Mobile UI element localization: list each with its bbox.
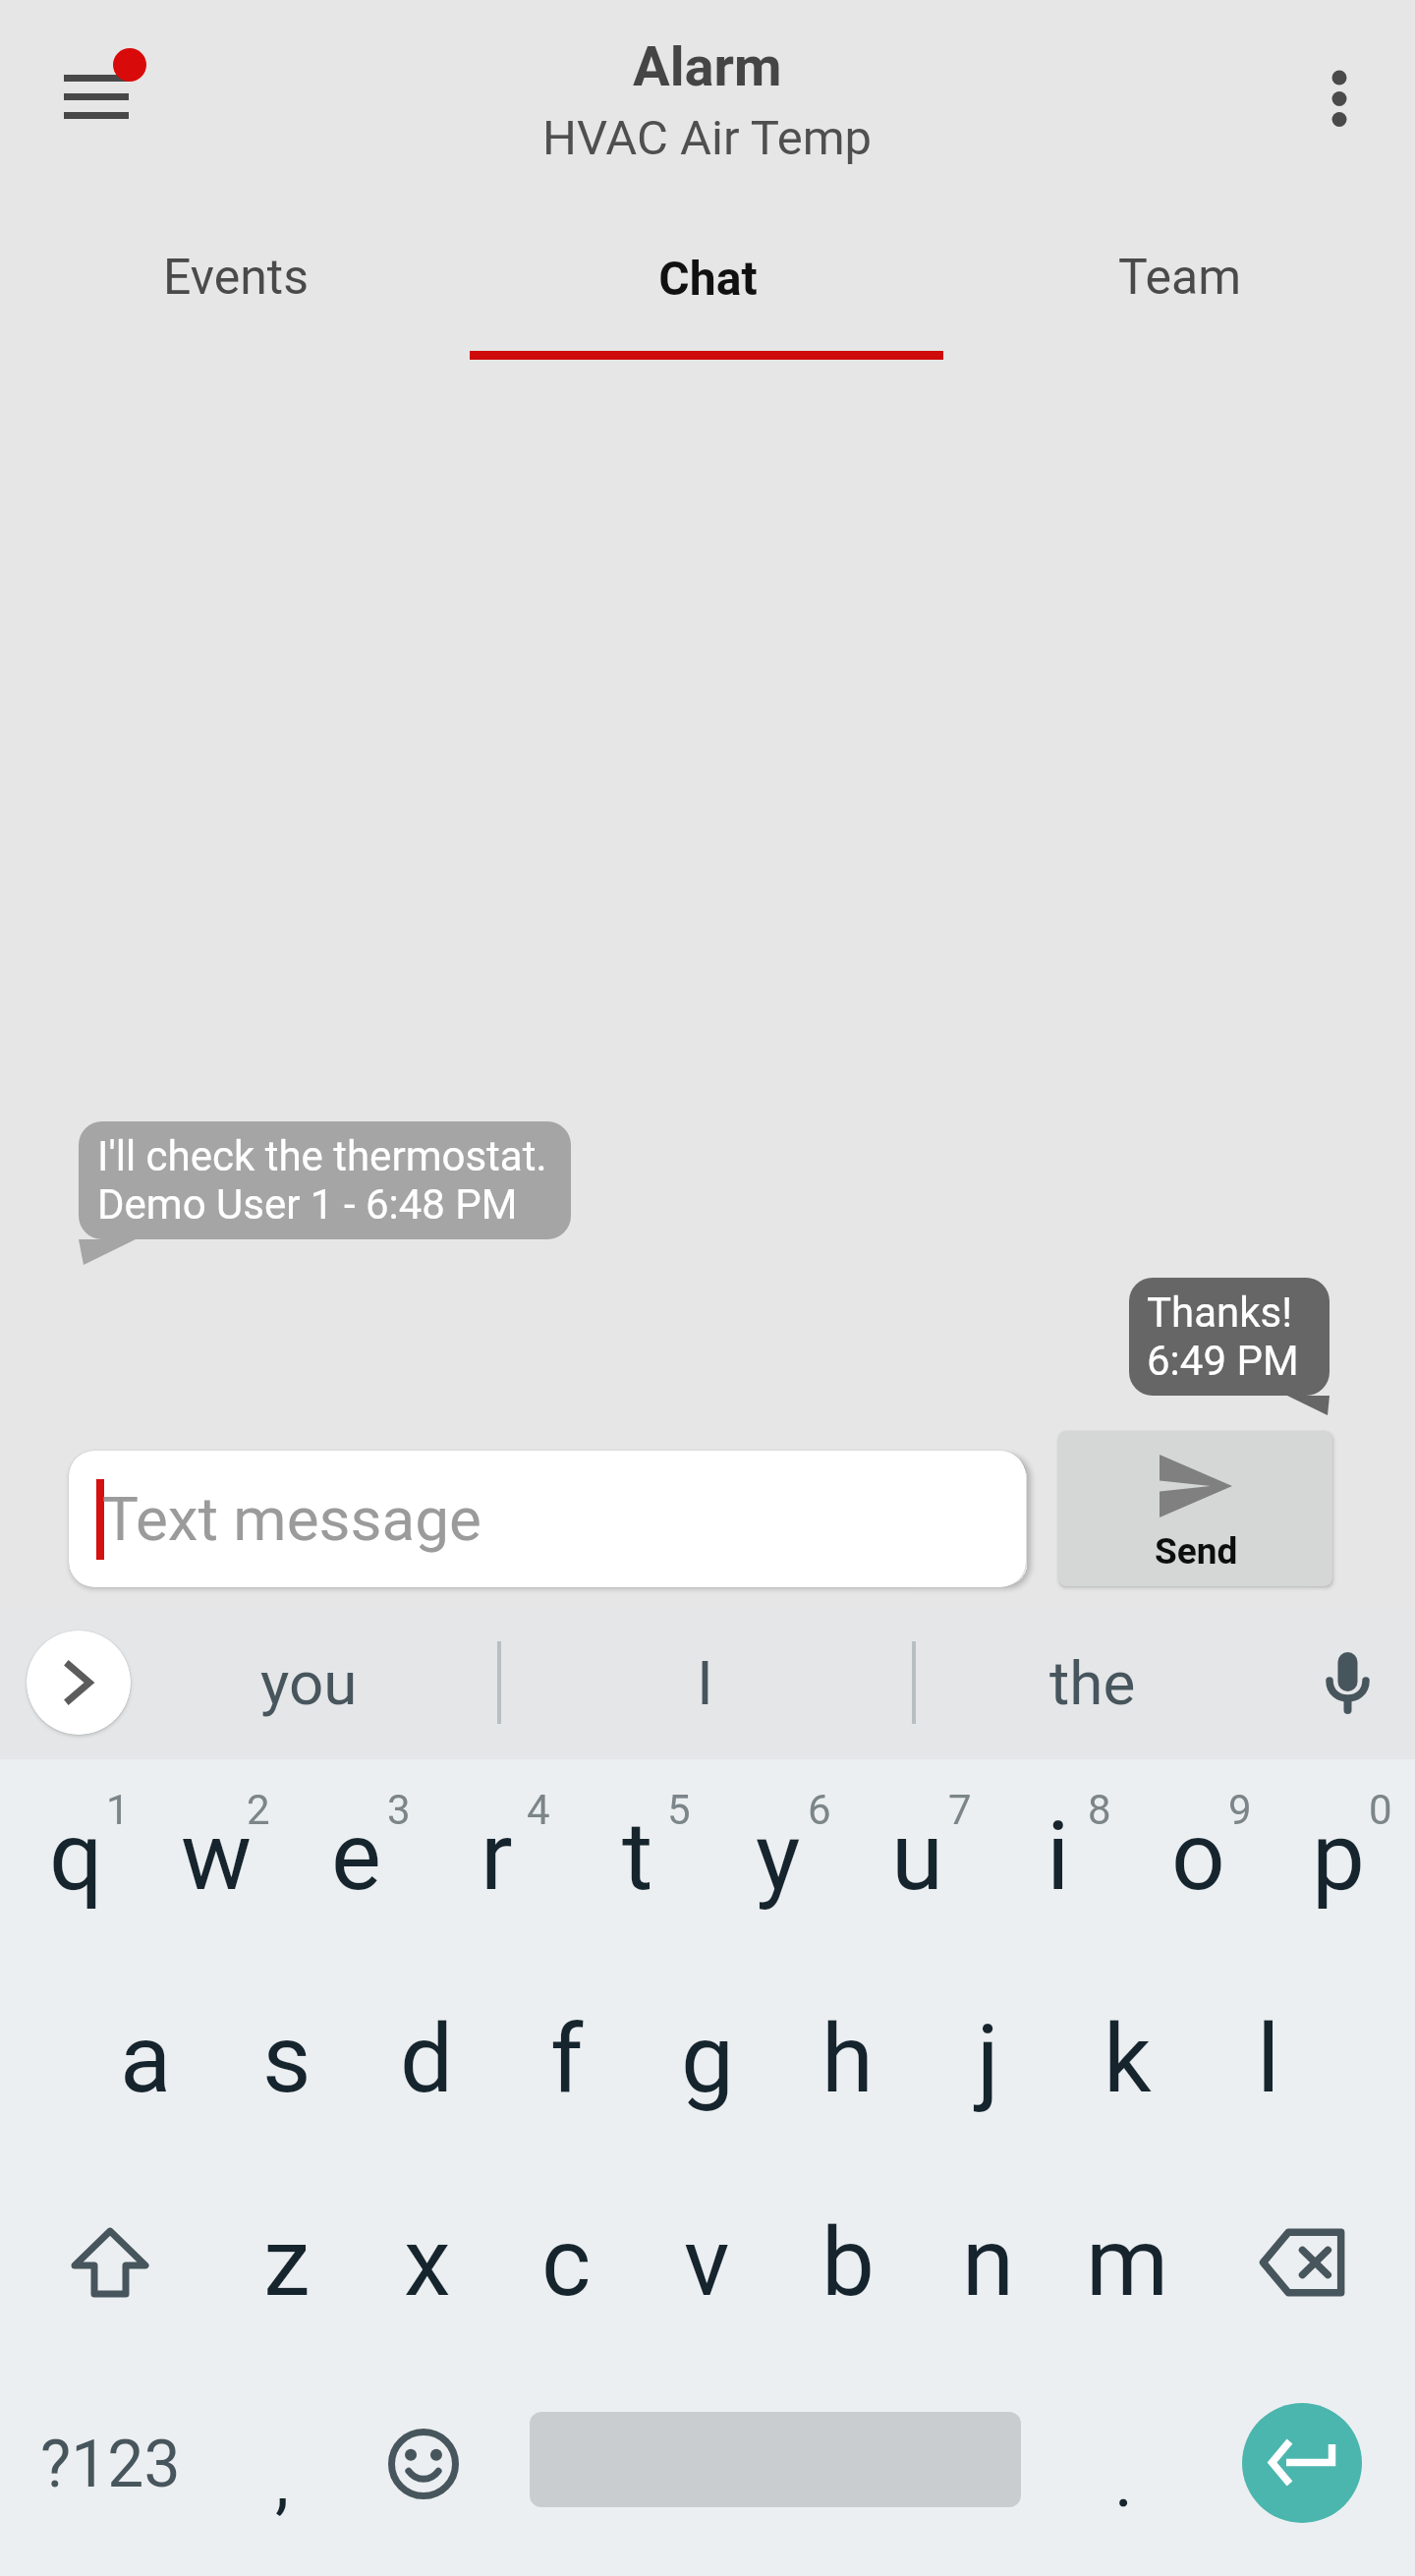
staticText: ?123 — [40, 2427, 181, 2502]
staticText: you — [260, 1647, 358, 1719]
staticText: 4 — [527, 1786, 550, 1834]
staticText: 5 — [667, 1786, 691, 1834]
staticText: Alarm — [633, 34, 782, 99]
button[interactable]: z — [216, 2164, 357, 2361]
staticText: b — [821, 2207, 875, 2318]
button[interactable]: . — [1064, 2371, 1182, 2557]
button[interactable]: m — [1057, 2164, 1198, 2361]
button[interactable]: e — [286, 1758, 426, 1955]
staticText: I'll check the thermostat. — [97, 1132, 547, 1180]
staticText: r — [481, 1802, 513, 1913]
button[interactable]: r — [426, 1758, 567, 1955]
staticText: 7 — [948, 1786, 972, 1834]
staticText: e — [331, 1802, 381, 1913]
button[interactable]: p — [1268, 1758, 1408, 1955]
button[interactable]: Send — [1058, 1431, 1332, 1586]
button[interactable]: d — [357, 1961, 497, 2157]
staticText: c — [541, 2207, 592, 2318]
staticText: 6 — [808, 1786, 831, 1834]
button[interactable]: you — [191, 1624, 426, 1742]
button[interactable]: Backspace — [1197, 2164, 1407, 2361]
staticText: t — [622, 1802, 653, 1913]
button[interactable]: i — [988, 1758, 1128, 1955]
staticText: I — [697, 1647, 713, 1719]
staticText: 6:49 PM — [1147, 1337, 1299, 1385]
staticText: i — [1047, 1802, 1070, 1913]
button[interactable]: h — [777, 1961, 918, 2157]
button[interactable]: w — [146, 1758, 287, 1955]
button[interactable]: Open navigation menu — [29, 18, 177, 165]
button[interactable]: o — [1128, 1758, 1269, 1955]
button[interactable]: Text message — [69, 1451, 1026, 1587]
button[interactable]: n — [918, 2164, 1058, 2361]
button[interactable]: Thanks! — [1147, 1288, 1299, 1385]
staticText: w — [181, 1802, 253, 1913]
button[interactable]: Enter — [1242, 2403, 1362, 2523]
staticText: 3 — [387, 1786, 411, 1834]
button[interactable]: y — [707, 1758, 848, 1955]
staticText: Demo User 1 - 6:48 PM — [97, 1180, 518, 1229]
staticText: o — [1171, 1802, 1225, 1913]
staticText: Events — [163, 249, 309, 307]
button[interactable]: s — [216, 1961, 357, 2157]
staticText: . — [1114, 2440, 1133, 2523]
staticText: z — [263, 2207, 311, 2318]
staticText: x — [404, 2207, 451, 2318]
button[interactable]: I'll check the thermostat. — [97, 1132, 547, 1229]
staticText: 0 — [1369, 1786, 1392, 1834]
button[interactable]: u — [847, 1758, 988, 1955]
button[interactable]: g — [637, 1961, 777, 2157]
staticText: j — [977, 2004, 999, 2115]
button[interactable]: Events — [0, 246, 472, 310]
staticText: Text message — [102, 1483, 481, 1555]
staticText: 8 — [1088, 1786, 1111, 1834]
button[interactable]: j — [918, 1961, 1058, 2157]
staticText: l — [1257, 2004, 1280, 2115]
staticText: a — [120, 2004, 172, 2115]
staticText: 1 — [106, 1786, 130, 1834]
button[interactable]: Chat — [472, 246, 943, 310]
staticText: Thanks! — [1147, 1288, 1293, 1337]
button[interactable]: q — [6, 1758, 146, 1955]
staticText: q — [49, 1802, 103, 1913]
button[interactable]: v — [637, 2164, 777, 2361]
staticText: 9 — [1228, 1786, 1252, 1834]
staticText: Chat — [658, 251, 758, 306]
staticText: HVAC Air Temp — [542, 110, 873, 166]
button[interactable]: the — [975, 1624, 1211, 1742]
button[interactable]: Emoji — [360, 2371, 487, 2557]
button[interactable]: l — [1198, 1961, 1338, 2157]
staticText: the — [1049, 1647, 1136, 1719]
staticText: v — [684, 2207, 730, 2318]
staticText: n — [962, 2207, 1015, 2318]
staticText: d — [400, 2004, 454, 2115]
staticText: f — [550, 2004, 584, 2115]
staticText: m — [1086, 2207, 1169, 2318]
button[interactable]: ?123 — [12, 2371, 208, 2557]
button[interactable]: k — [1057, 1961, 1198, 2157]
button[interactable]: x — [357, 2164, 497, 2361]
staticText: p — [1312, 1802, 1365, 1913]
button[interactable]: I — [587, 1624, 822, 1742]
button[interactable]: , — [223, 2371, 341, 2557]
button[interactable]: c — [496, 2164, 637, 2361]
button[interactable]: a — [76, 1961, 216, 2157]
staticText: s — [262, 2004, 311, 2115]
button[interactable]: t — [567, 1758, 707, 1955]
button[interactable]: f — [496, 1961, 637, 2157]
button[interactable]: Shift — [5, 2164, 215, 2361]
button[interactable]: b — [777, 2164, 918, 2361]
staticText: 2 — [247, 1786, 270, 1834]
button[interactable]: More options — [1266, 24, 1413, 171]
staticText: u — [891, 1802, 943, 1913]
staticText: Send — [1155, 1530, 1238, 1573]
staticText: y — [756, 1802, 801, 1913]
staticText: g — [681, 2004, 734, 2115]
button[interactable]: Team — [943, 246, 1415, 310]
staticText: , — [275, 2440, 290, 2523]
button[interactable]: Voice input — [1298, 1633, 1396, 1732]
staticText: k — [1104, 2004, 1152, 2115]
button[interactable]: Show more suggestions — [27, 1631, 131, 1735]
staticText: Team — [1118, 249, 1241, 307]
